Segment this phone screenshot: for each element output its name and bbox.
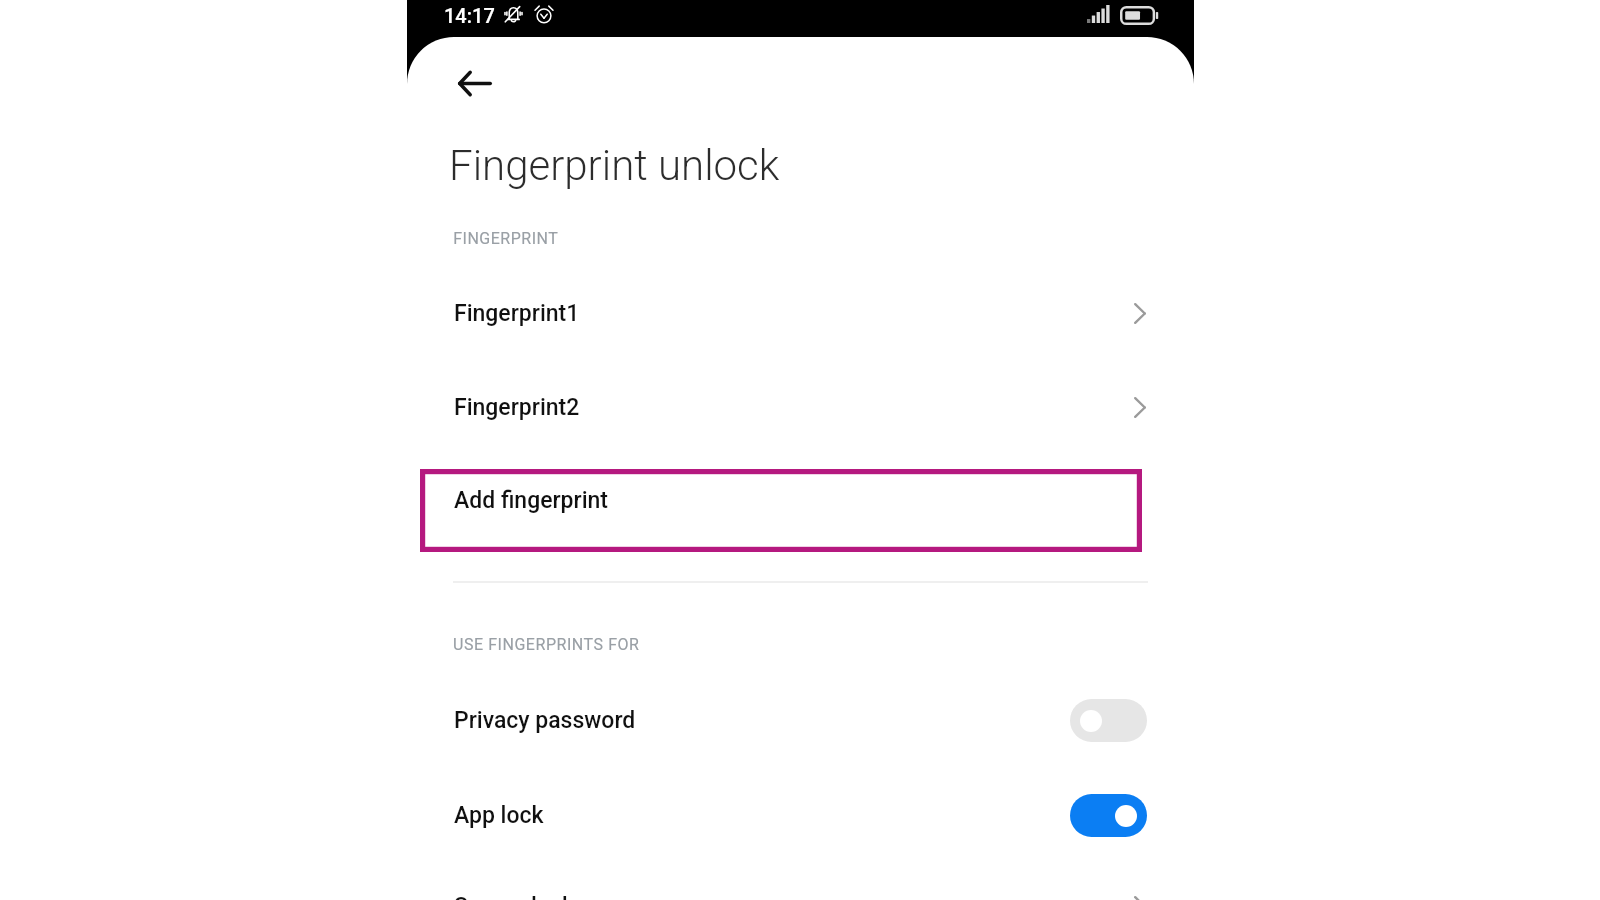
button[interactable]: Fingerprint1	[407, 278, 1194, 354]
staticText: 14:17	[444, 4, 495, 27]
staticText: USE FINGERPRINTS FOR	[453, 635, 640, 654]
button[interactable]: Screen lock	[407, 871, 1194, 900]
staticText: Add fingerprint	[454, 487, 609, 514]
button[interactable]: App lock	[407, 780, 1194, 856]
staticText: FINGERPRINT	[453, 229, 558, 248]
button[interactable]: Privacy password	[1070, 699, 1147, 742]
staticText: App lock	[454, 802, 544, 829]
staticText: Fingerprint2	[454, 394, 580, 421]
staticText: Screen lock	[454, 893, 574, 900]
button[interactable]: Fingerprint2	[407, 372, 1194, 448]
button[interactable]: Privacy password	[407, 685, 1194, 761]
button[interactable]: Back	[451, 59, 499, 107]
button[interactable]: App lock	[1070, 794, 1147, 837]
staticText: Fingerprint1	[454, 300, 580, 327]
button[interactable]: Add fingerprint	[420, 469, 1142, 552]
staticText: Fingerprint unlock	[449, 141, 780, 190]
staticText: Privacy password	[454, 707, 636, 734]
